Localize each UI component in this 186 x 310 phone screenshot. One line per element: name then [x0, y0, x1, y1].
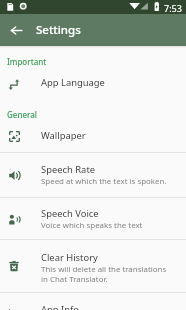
button[interactable]: Speech Voice [0, 198, 186, 239]
staticText: Speed at which the text is spoken. [41, 176, 167, 186]
button[interactable]: App Language [0, 67, 186, 99]
staticText: Wallpaper [41, 130, 86, 142]
staticText: 7:53 [164, 2, 182, 14]
staticText: General [7, 111, 37, 120]
staticText: Settings [36, 22, 81, 38]
button[interactable]: Clear History [0, 240, 186, 292]
staticText: Important [7, 58, 47, 67]
staticText: This will delete all the translations in… [41, 264, 171, 284]
staticText: Voice which speaks the text [41, 220, 143, 230]
staticText: App Info [41, 304, 79, 310]
button[interactable]: Wallpaper [0, 120, 186, 152]
button[interactable]: App Info [0, 293, 186, 310]
staticText: App Language [41, 77, 105, 89]
staticText: Clear History [41, 252, 98, 264]
staticText: Speech Rate [41, 164, 96, 176]
button[interactable]: Back [4, 18, 28, 42]
button[interactable]: Speech Rate [0, 153, 186, 197]
staticText: Speech Voice [41, 208, 99, 220]
